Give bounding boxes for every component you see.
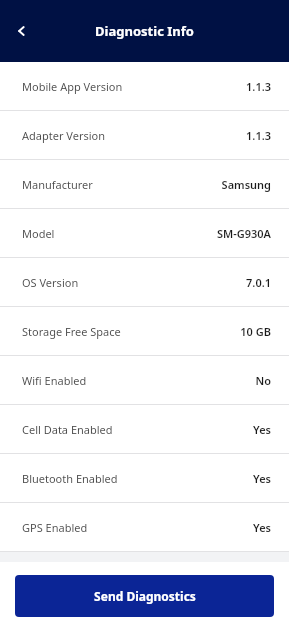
staticText: Model [22, 226, 55, 241]
staticText: SM-G930A [216, 226, 271, 241]
staticText: Storage Free Space [22, 324, 121, 339]
button[interactable]: GPS Enabled [0, 503, 289, 551]
staticText: Send Diagnostics [94, 588, 196, 604]
button[interactable]: Wifi Enabled [0, 356, 289, 404]
button[interactable]: Send Diagnostics [15, 575, 274, 617]
button[interactable]: Adapter Version [0, 111, 289, 159]
staticText: Manufacturer [22, 177, 93, 192]
button[interactable]: Back [8, 17, 36, 45]
staticText: GPS Enabled [22, 520, 88, 535]
staticText: Bluetooth Enabled [22, 471, 118, 486]
staticText: Yes [253, 520, 271, 535]
staticText: 10 GB [240, 324, 271, 339]
button[interactable]: Mobile App Version [0, 62, 289, 110]
staticText: 1.1.3 [246, 79, 271, 94]
staticText: Yes [253, 471, 271, 486]
staticText: Adapter Version [22, 128, 105, 143]
staticText: Diagnostic Info [95, 22, 194, 40]
staticText: Mobile App Version [22, 79, 123, 94]
button[interactable]: Manufacturer [0, 160, 289, 208]
staticText: 7.0.1 [246, 275, 271, 290]
staticText: Wifi Enabled [22, 373, 87, 388]
button[interactable]: Storage Free Space [0, 307, 289, 355]
staticText: OS Version [22, 275, 79, 290]
button[interactable]: Model [0, 209, 289, 257]
button[interactable]: Cell Data Enabled [0, 405, 289, 453]
staticText: Yes [253, 422, 271, 437]
staticText: No [255, 373, 271, 388]
staticText: Cell Data Enabled [22, 422, 113, 437]
button[interactable]: Bluetooth Enabled [0, 454, 289, 502]
staticText: 1.1.3 [246, 128, 271, 143]
button[interactable]: OS Version [0, 258, 289, 306]
staticText: Samsung [221, 177, 271, 192]
